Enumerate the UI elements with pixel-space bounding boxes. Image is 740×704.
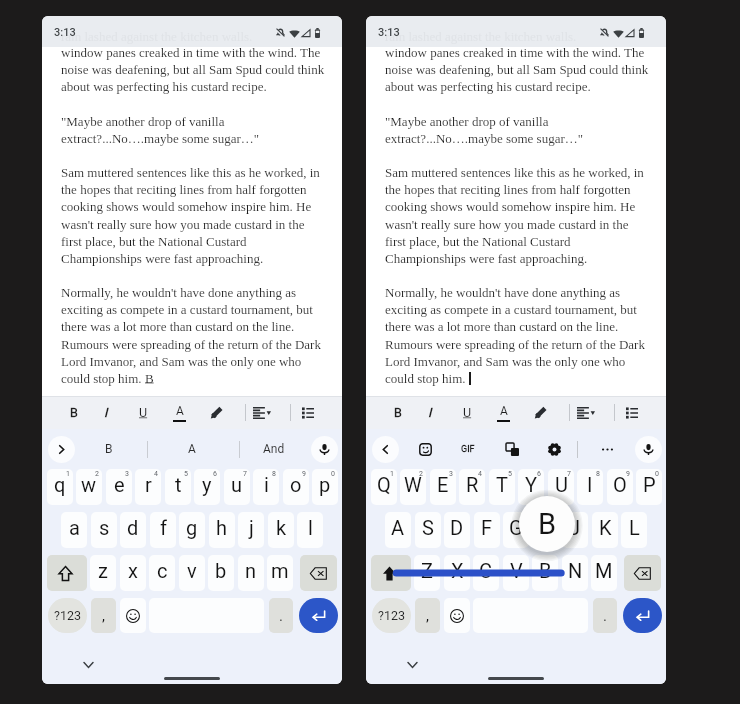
button[interactable]: Comma (415, 598, 440, 633)
button[interactable]: g (179, 512, 205, 548)
button[interactable]: Voice input (311, 436, 338, 463)
button[interactable]: Comma (91, 598, 116, 633)
button[interactable]: Bulleted list (298, 396, 318, 429)
button[interactable]: D (444, 512, 470, 548)
button[interactable]: z (90, 555, 116, 591)
button[interactable]: C (473, 555, 499, 591)
button[interactable]: Z (414, 555, 440, 591)
button[interactable]: Backspace (300, 555, 337, 591)
button[interactable]: v (179, 555, 205, 591)
button[interactable]: A (169, 396, 189, 429)
button[interactable]: Align (573, 396, 597, 429)
button[interactable]: S (415, 512, 441, 548)
button[interactable]: V (503, 555, 529, 591)
button[interactable]: X (444, 555, 470, 591)
button[interactable]: Enter (299, 598, 338, 633)
button[interactable]: f (150, 512, 176, 548)
button[interactable]: A (493, 396, 513, 429)
button[interactable]: s (91, 512, 117, 548)
button[interactable]: Hide keyboard (399, 652, 425, 678)
button[interactable]: U (133, 396, 153, 429)
button[interactable]: Highlight (206, 396, 226, 429)
button[interactable]: I (96, 396, 116, 429)
button[interactable]: J (562, 512, 588, 548)
button[interactable]: Emoji (120, 598, 146, 633)
button[interactable]: B (64, 396, 84, 429)
button[interactable]: B (388, 396, 408, 429)
button[interactable]: Symbols (372, 598, 411, 633)
button[interactable]: G (503, 512, 529, 548)
button[interactable]: q (47, 469, 73, 505)
staticText: Y (525, 473, 538, 496)
button[interactable]: Q (371, 469, 397, 505)
button[interactable]: R (459, 469, 485, 505)
button[interactable]: Back (372, 436, 399, 463)
button[interactable]: Align (249, 396, 273, 429)
button[interactable]: K (592, 512, 618, 548)
button[interactable]: M (591, 555, 617, 591)
button[interactable]: O (607, 469, 633, 505)
button[interactable]: Shift (371, 555, 411, 591)
button[interactable]: Period (593, 598, 617, 633)
button[interactable]: Voice input (635, 436, 662, 463)
button[interactable]: Hide keyboard (75, 652, 101, 678)
button[interactable]: h (209, 512, 235, 548)
button[interactable]: Period (269, 598, 293, 633)
button[interactable]: o (283, 469, 309, 505)
button[interactable]: u (224, 469, 250, 505)
button[interactable]: A (385, 512, 411, 548)
button[interactable]: d (120, 512, 146, 548)
staticText: p (319, 473, 331, 496)
button[interactable]: I (577, 469, 603, 505)
button[interactable]: p (312, 469, 338, 505)
button[interactable]: N (562, 555, 588, 591)
button[interactable]: F (474, 512, 500, 548)
button[interactable]: A (170, 429, 214, 469)
button[interactable]: U (457, 396, 477, 429)
button[interactable]: Backspace (624, 555, 661, 591)
button[interactable]: Bulleted list (622, 396, 642, 429)
button[interactable]: m (267, 555, 293, 591)
button[interactable]: c (149, 555, 175, 591)
button[interactable]: r (135, 469, 161, 505)
button[interactable]: And (252, 429, 296, 469)
button[interactable]: a (61, 512, 87, 548)
staticText: rain lashed against the kitchen walls. (61, 29, 253, 43)
button[interactable]: Symbols (48, 598, 87, 633)
button[interactable]: l (297, 512, 323, 548)
button[interactable]: Translate (499, 436, 526, 463)
button[interactable]: b (208, 555, 234, 591)
button[interactable]: Highlight (530, 396, 550, 429)
button[interactable]: Y (518, 469, 544, 505)
button[interactable]: L (621, 512, 647, 548)
button[interactable]: T (489, 469, 515, 505)
button[interactable]: B (87, 429, 131, 469)
button[interactable]: i (253, 469, 279, 505)
button[interactable]: y (194, 469, 220, 505)
button[interactable]: Shift (47, 555, 87, 591)
button[interactable]: x (120, 555, 146, 591)
button[interactable]: Expand toolbar (48, 436, 75, 463)
button[interactable]: W (400, 469, 426, 505)
staticText: e (114, 473, 125, 496)
button[interactable]: j (238, 512, 264, 548)
button[interactable]: n (238, 555, 264, 591)
button[interactable]: Emoji (444, 598, 470, 633)
button[interactable]: k (268, 512, 294, 548)
button[interactable]: Settings (541, 436, 568, 463)
button[interactable]: U (548, 469, 574, 505)
button[interactable]: H (533, 512, 559, 548)
button[interactable]: I (420, 396, 440, 429)
button[interactable]: More options (594, 436, 621, 463)
button[interactable]: B (532, 555, 558, 591)
button[interactable]: P (636, 469, 662, 505)
button[interactable]: GIF (454, 429, 482, 469)
button[interactable]: t (165, 469, 191, 505)
button[interactable]: w (76, 469, 102, 505)
button[interactable]: Enter (623, 598, 662, 633)
button[interactable]: Stickers (412, 436, 439, 463)
button[interactable]: e (106, 469, 132, 505)
button[interactable]: E (430, 469, 456, 505)
